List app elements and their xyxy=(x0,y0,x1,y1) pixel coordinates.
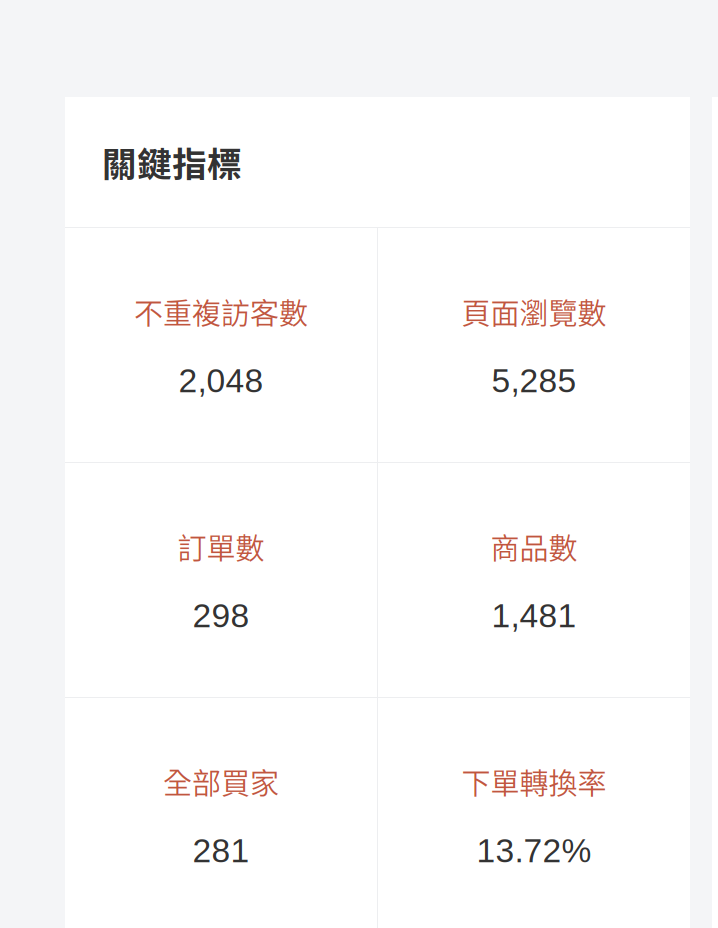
staticText: 281 xyxy=(192,832,249,869)
button[interactable]: 不重複訪客數 xyxy=(65,228,377,462)
staticText: 頁面瀏覽數 xyxy=(461,291,606,333)
staticText: 298 xyxy=(192,597,249,634)
staticText: 不重複訪客數 xyxy=(134,291,308,333)
staticText: 1,481 xyxy=(491,597,576,634)
staticText: 全部買家 xyxy=(163,761,279,803)
button[interactable]: 下單轉換率 xyxy=(378,698,690,928)
staticText: 13.72% xyxy=(476,832,591,869)
button[interactable]: 頁面瀏覽數 xyxy=(378,228,690,462)
staticText: 商品數 xyxy=(490,526,577,568)
staticText: 下單轉換率 xyxy=(461,761,606,803)
button[interactable]: 訂單數 xyxy=(65,463,377,697)
staticText: 關鍵指標 xyxy=(102,137,242,187)
staticText: 2,048 xyxy=(178,362,263,399)
staticText: 5,285 xyxy=(491,362,576,399)
button[interactable]: 全部買家 xyxy=(65,698,377,928)
button[interactable]: 商品數 xyxy=(378,463,690,697)
staticText: 訂單數 xyxy=(177,526,264,568)
